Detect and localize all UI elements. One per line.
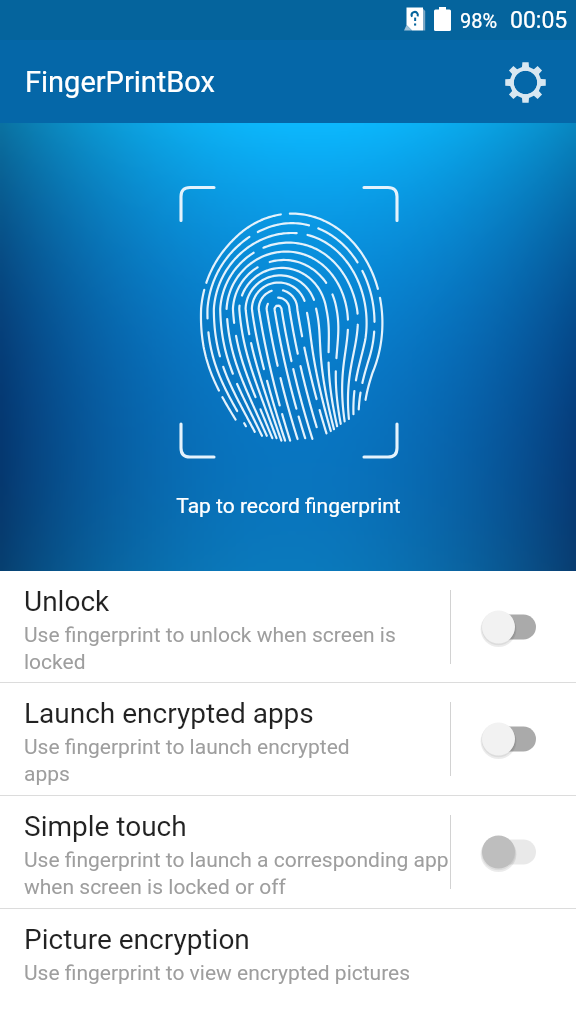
button[interactable]: Toggle Launch encrypted apps <box>441 683 576 795</box>
staticText: Use fingerprint to launch a correspondin… <box>24 848 449 899</box>
button[interactable]: Simple touch <box>0 796 576 908</box>
staticText: 98% <box>460 9 498 32</box>
button[interactable]: Launch encrypted apps <box>0 683 576 795</box>
staticText: Use fingerprint to launch encrypted apps <box>24 735 350 786</box>
button[interactable]: Unlock <box>0 571 576 682</box>
staticText: 00:05 <box>510 7 568 34</box>
button[interactable]: Tap to record fingerprint <box>0 123 576 571</box>
staticText: Use fingerprint to unlock when screen is… <box>24 623 454 674</box>
staticText: FingerPrintBox <box>25 65 215 99</box>
staticText: Unlock <box>24 585 110 618</box>
button[interactable]: Picture encryption <box>0 909 576 1024</box>
staticText: Tap to record fingerprint <box>176 494 401 519</box>
button[interactable]: Settings <box>501 58 549 106</box>
staticText: Picture encryption <box>24 923 250 956</box>
staticText: Use fingerprint to view encrypted pictur… <box>24 961 411 986</box>
button[interactable]: Toggle Unlock <box>441 571 576 682</box>
staticText: Launch encrypted apps <box>24 697 314 730</box>
staticText: Simple touch <box>24 810 187 843</box>
button[interactable]: Toggle Simple touch <box>441 796 576 908</box>
